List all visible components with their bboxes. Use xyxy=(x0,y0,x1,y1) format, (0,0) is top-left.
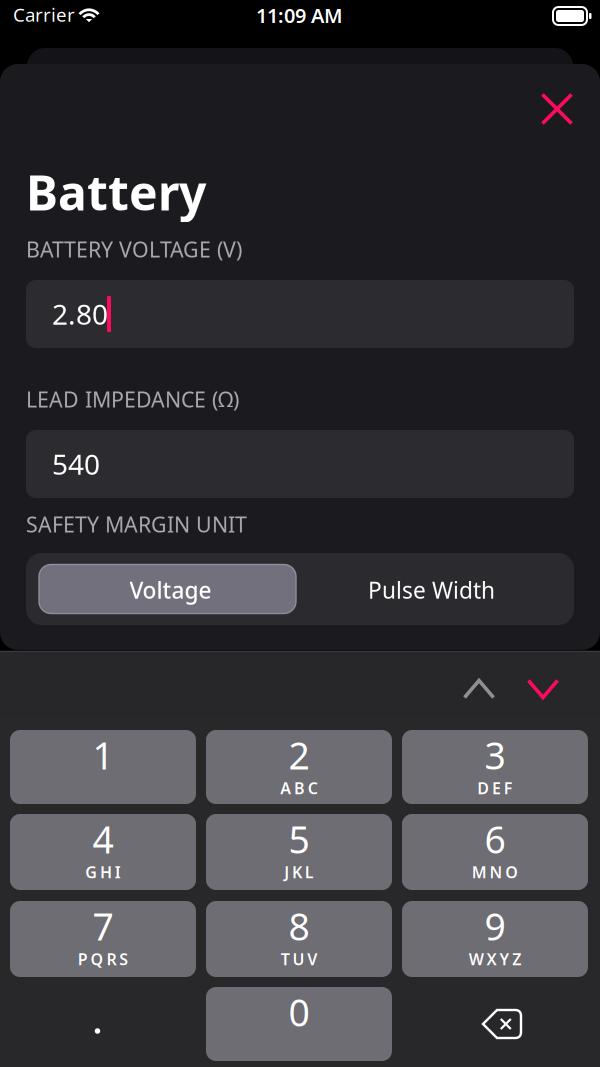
staticText: 5 xyxy=(288,814,309,864)
staticText: GHI xyxy=(85,861,121,883)
staticText: SAFETY MARGIN UNIT xyxy=(26,510,247,538)
staticText: Pulse Width xyxy=(368,575,495,605)
button[interactable]: 2 xyxy=(206,730,392,804)
button[interactable]: 9 xyxy=(402,901,588,977)
button[interactable]: 5 xyxy=(206,814,392,890)
button[interactable]: 1 xyxy=(10,730,196,804)
staticText: 2.80 xyxy=(52,295,108,333)
staticText: 6 xyxy=(484,814,505,864)
button[interactable]: 0 xyxy=(206,987,392,1061)
button[interactable]: Dismiss keyboard xyxy=(517,663,569,715)
staticText: MNO xyxy=(472,861,518,883)
button[interactable]: 7 xyxy=(10,901,196,977)
staticText: ABC xyxy=(280,777,318,799)
staticText: WXYZ xyxy=(469,948,521,970)
staticText: Voltage xyxy=(129,575,211,605)
staticText: 11:09 AM xyxy=(256,2,343,29)
staticText: 1 xyxy=(92,730,113,780)
button[interactable]: Decimal point xyxy=(10,987,196,1061)
button[interactable]: Delete xyxy=(402,987,588,1061)
staticText: DEF xyxy=(477,777,513,799)
staticText: 8 xyxy=(288,901,309,951)
staticText: JKL xyxy=(284,861,314,883)
button[interactable]: 3 xyxy=(402,730,588,804)
staticText: Battery xyxy=(26,160,206,224)
staticText: TUV xyxy=(281,948,317,970)
staticText: 2 xyxy=(288,730,309,780)
button[interactable]: Voltage xyxy=(39,564,296,613)
button[interactable]: Close xyxy=(531,83,583,135)
button[interactable]: 8 xyxy=(206,901,392,977)
staticText: LEAD IMPEDANCE (Ω) xyxy=(26,385,239,413)
button[interactable]: Pulse Width xyxy=(296,564,553,613)
staticText: 3 xyxy=(484,730,505,780)
staticText: 540 xyxy=(52,445,100,483)
button[interactable]: Previous field xyxy=(453,663,505,715)
staticText: Carrier xyxy=(13,2,75,27)
button[interactable]: 4 xyxy=(10,814,196,890)
staticText: 0 xyxy=(288,987,309,1037)
staticText: 9 xyxy=(484,901,505,951)
staticText: 7 xyxy=(92,901,113,951)
button[interactable]: 6 xyxy=(402,814,588,890)
staticText: PQRS xyxy=(78,948,128,970)
staticText: 4 xyxy=(92,814,113,864)
staticText: BATTERY VOLTAGE (V) xyxy=(26,235,242,263)
